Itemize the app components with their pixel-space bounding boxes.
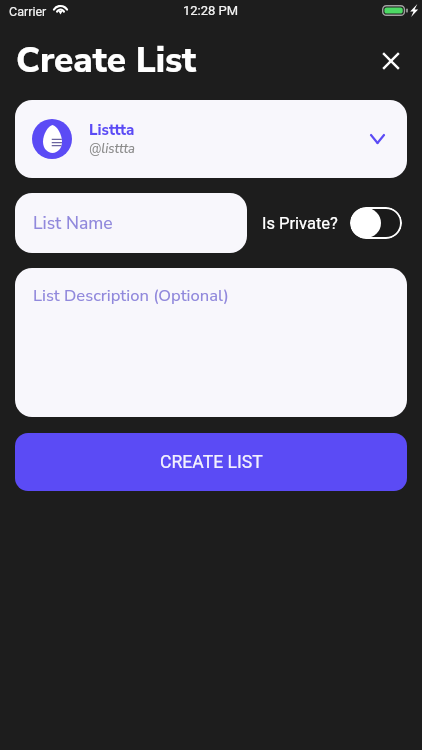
staticText: Create List [16, 37, 197, 85]
staticText: Listtta [89, 120, 135, 140]
staticText: @listtta [89, 140, 135, 158]
staticText: List Description (Optional) [33, 284, 229, 307]
staticText: List Name [33, 211, 113, 235]
staticText: CREATE LIST [160, 452, 263, 473]
button[interactable]: List Description (Optional) [15, 268, 407, 417]
button[interactable]: CREATE LIST [15, 433, 407, 491]
staticText: 12:28 PM [183, 3, 239, 18]
button[interactable]: Listtta [15, 100, 407, 178]
staticText: Carrier [9, 4, 47, 19]
button[interactable]: Is Private toggle [350, 207, 402, 239]
button[interactable]: Close [371, 41, 411, 81]
button[interactable]: List Name [15, 193, 247, 253]
staticText: Is Private? [262, 214, 338, 233]
